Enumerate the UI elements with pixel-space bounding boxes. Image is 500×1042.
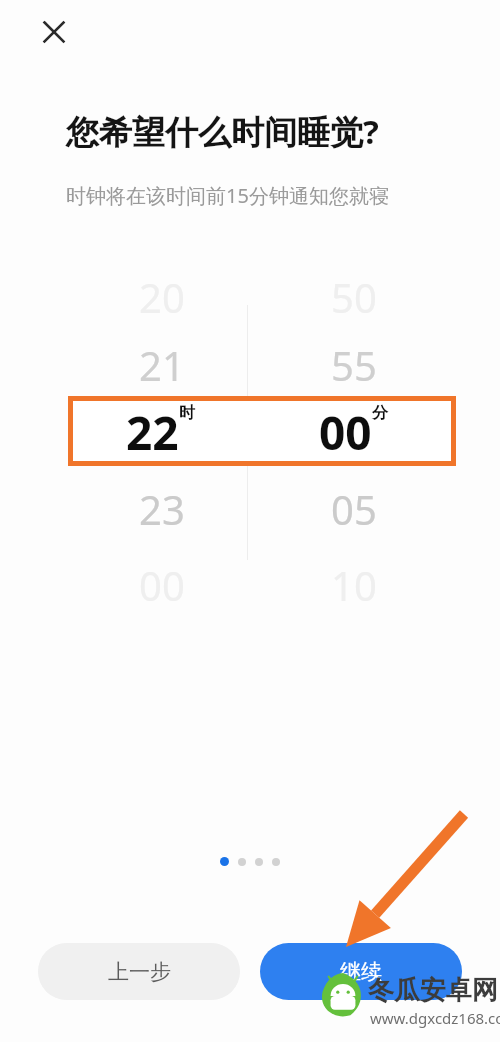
- staticText: 22: [126, 401, 179, 464]
- staticText: 继续: [340, 959, 382, 985]
- staticText: 00: [319, 401, 372, 464]
- button[interactable]: 上一步: [38, 943, 240, 1000]
- staticText: 05: [331, 482, 377, 536]
- staticText: 上一步: [108, 959, 171, 985]
- button[interactable]: [68, 396, 456, 466]
- staticText: www.dgxcdz168.com: [370, 1008, 500, 1028]
- staticText: 时钟将在该时间前15分钟通知您就寝: [66, 182, 389, 209]
- staticText: 23: [139, 482, 185, 536]
- staticText: 10: [331, 558, 377, 612]
- button[interactable]: 继续: [260, 943, 462, 1000]
- staticText: 20: [139, 270, 185, 324]
- staticText: 21: [139, 338, 185, 392]
- staticText: 冬瓜安卓网: [368, 974, 498, 1007]
- button[interactable]: Close: [30, 8, 78, 56]
- staticText: 50: [331, 270, 377, 324]
- staticText: 时: [179, 403, 195, 423]
- staticText: 您希望什么时间睡觉?: [66, 109, 379, 154]
- staticText: 分: [372, 403, 388, 423]
- staticText: 00: [139, 558, 185, 612]
- staticText: 55: [331, 338, 377, 392]
